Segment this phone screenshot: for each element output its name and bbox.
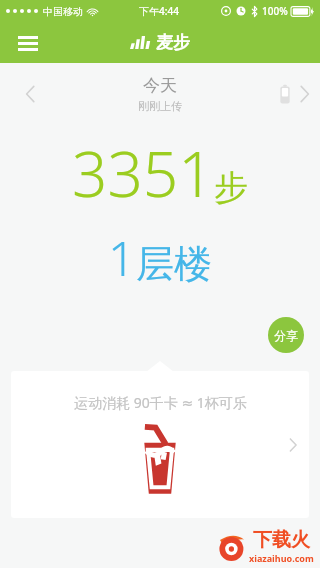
staticText: 分享 — [274, 328, 298, 343]
staticText: 100% — [262, 4, 288, 18]
staticText: 今天 — [143, 75, 177, 96]
staticText: 3351 — [72, 131, 214, 215]
button[interactable]: Previous day — [10, 74, 50, 114]
staticText: 中国移动 — [43, 5, 83, 18]
staticText: 层楼 — [136, 240, 212, 288]
button[interactable]: 分享 — [268, 317, 304, 353]
staticText: 运动消耗 90千卡 ≈ 1杯可乐 — [74, 393, 247, 412]
button[interactable]: 运动消耗 90千卡 ≈ 1杯可乐 — [11, 371, 309, 518]
button[interactable]: Device battery — [279, 84, 312, 104]
staticText: 步 — [214, 166, 248, 209]
staticText: 1 — [108, 225, 136, 290]
staticText: 麦步 — [156, 32, 190, 53]
staticText: 下午4:44 — [139, 4, 179, 18]
button[interactable]: Menu — [8, 23, 48, 63]
staticText: 刚刚上传 — [138, 99, 182, 113]
staticText: xiazaihuo.com — [249, 552, 314, 564]
staticText: 下载火 — [253, 528, 310, 552]
